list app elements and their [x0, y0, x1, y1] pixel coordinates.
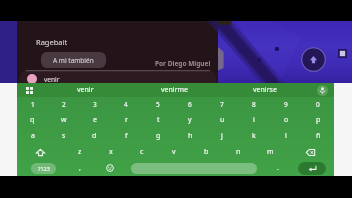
button[interactable]: e	[79, 112, 110, 128]
button[interactable]: 2	[48, 97, 79, 112]
staticText: 3	[93, 100, 97, 109]
staticText: k	[252, 131, 256, 141]
button[interactable]: venir	[20, 70, 216, 83]
button[interactable]: 8	[238, 97, 270, 112]
staticText: v	[172, 147, 176, 157]
staticText: venirse	[253, 85, 277, 95]
button[interactable]: Space	[131, 163, 257, 174]
staticText: i	[253, 115, 255, 125]
staticText: y	[188, 115, 192, 125]
button[interactable]: a	[17, 128, 48, 144]
button[interactable]: u	[206, 112, 238, 128]
button[interactable]: c	[126, 144, 158, 160]
button[interactable]: f	[110, 128, 142, 144]
staticText: r	[125, 115, 128, 125]
button[interactable]: y	[174, 112, 206, 128]
button[interactable]: Backspace	[286, 144, 334, 160]
staticText: venir	[77, 85, 94, 95]
staticText: s	[62, 131, 66, 141]
staticText: n	[236, 147, 241, 157]
button[interactable]: d	[79, 128, 110, 144]
staticText: .	[277, 163, 279, 173]
button[interactable]: g	[142, 128, 174, 144]
staticText: 5	[156, 100, 160, 109]
staticText: l	[285, 131, 287, 141]
staticText: b	[204, 147, 209, 157]
staticText: ?123	[38, 165, 50, 172]
button[interactable]: p	[302, 112, 334, 128]
button[interactable]: z	[64, 144, 95, 160]
staticText: 1	[31, 100, 35, 109]
button[interactable]: venir	[41, 83, 130, 97]
button[interactable]: j	[206, 128, 238, 144]
button[interactable]: n	[222, 144, 254, 160]
button[interactable]: Voice input	[310, 83, 334, 97]
button[interactable]: t	[142, 112, 174, 128]
staticText: z	[78, 147, 82, 157]
button[interactable]: ?123	[31, 160, 56, 176]
staticText: Ragebait	[36, 37, 68, 47]
button[interactable]: Apps	[17, 83, 41, 97]
staticText: 2	[62, 100, 66, 109]
staticText: 6	[188, 100, 192, 109]
button[interactable]: l	[270, 128, 302, 144]
staticText: ñ	[316, 131, 321, 141]
staticText: w	[61, 115, 67, 125]
button[interactable]: .	[267, 160, 289, 176]
staticText: g	[156, 131, 161, 141]
button[interactable]: x	[95, 144, 126, 160]
staticText: d	[92, 131, 97, 141]
button[interactable]: m	[254, 144, 286, 160]
button[interactable]: Emoji	[99, 160, 121, 176]
staticText: ,	[79, 163, 81, 173]
button[interactable]: h	[174, 128, 206, 144]
staticText: e	[93, 115, 97, 125]
button[interactable]: 0	[302, 97, 334, 112]
button[interactable]: 3	[79, 97, 110, 112]
button[interactable]: 5	[142, 97, 174, 112]
staticText: 8	[252, 100, 256, 109]
staticText: venir	[44, 75, 60, 83]
button[interactable]: ñ	[302, 128, 334, 144]
button[interactable]: r	[110, 112, 142, 128]
staticText: 9	[284, 100, 288, 109]
staticText: f	[125, 131, 128, 141]
button[interactable]: b	[190, 144, 222, 160]
button[interactable]: v	[158, 144, 190, 160]
button[interactable]: s	[48, 128, 79, 144]
staticText: 7	[220, 100, 224, 109]
button[interactable]: Send	[301, 47, 326, 72]
button[interactable]: q	[17, 112, 48, 128]
staticText: h	[188, 131, 193, 141]
staticText: c	[140, 147, 144, 157]
button[interactable]: w	[48, 112, 79, 128]
staticText: j	[221, 131, 223, 141]
staticText: A mi también	[53, 56, 94, 65]
button[interactable]: Enter	[298, 162, 326, 175]
staticText: a	[31, 131, 35, 141]
button[interactable]: ,	[69, 160, 91, 176]
staticText: 0	[316, 100, 320, 109]
staticText: t	[157, 115, 160, 125]
button[interactable]: venirse	[220, 83, 310, 97]
staticText: u	[220, 115, 225, 125]
button[interactable]: o	[270, 112, 302, 128]
staticText: p	[316, 115, 321, 125]
button[interactable]: Shift	[17, 144, 64, 160]
button[interactable]: 6	[174, 97, 206, 112]
button[interactable]: 7	[206, 97, 238, 112]
staticText: o	[284, 115, 289, 125]
button[interactable]: venirme	[130, 83, 220, 97]
button[interactable]: 1	[17, 97, 48, 112]
button[interactable]: A mi también	[41, 52, 106, 68]
button[interactable]: 4	[110, 97, 142, 112]
staticText: q	[30, 115, 35, 125]
staticText: m	[267, 147, 274, 157]
button[interactable]: k	[238, 128, 270, 144]
staticText: x	[109, 147, 113, 157]
staticText: 4	[124, 100, 128, 109]
staticText: venirme	[161, 85, 189, 95]
staticText: Por Diego Miguel	[155, 59, 211, 68]
button[interactable]: i	[238, 112, 270, 128]
button[interactable]: 9	[270, 97, 302, 112]
